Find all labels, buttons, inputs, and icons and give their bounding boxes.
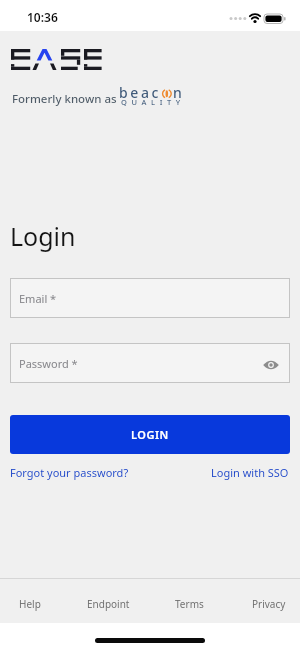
staticText: QUALITY xyxy=(121,97,185,107)
staticText: Email * xyxy=(19,291,57,306)
staticText: Endpoint xyxy=(87,597,130,611)
button[interactable]: Terms xyxy=(175,597,204,611)
staticText: Forgot your password? xyxy=(10,465,129,480)
staticText: 10:36 xyxy=(27,9,58,25)
staticText: Login xyxy=(10,219,76,253)
staticText: Help xyxy=(19,597,41,611)
button[interactable]: Password * xyxy=(10,343,290,383)
staticText: Formerly known as xyxy=(12,91,117,107)
button[interactable]: Email * xyxy=(10,278,290,318)
button[interactable]: Forgot your password? xyxy=(10,465,129,480)
staticText: Password * xyxy=(19,356,78,371)
button[interactable]: Help xyxy=(19,597,41,611)
staticText: n xyxy=(173,83,182,102)
staticText: Terms xyxy=(175,597,204,611)
button[interactable]: Privacy xyxy=(252,597,286,611)
button[interactable]: Endpoint xyxy=(87,597,130,611)
button[interactable]: LOGIN xyxy=(10,415,290,454)
staticText: LOGIN xyxy=(131,427,169,442)
button[interactable]: Login with SSO xyxy=(211,465,289,480)
staticText: beac xyxy=(119,83,161,102)
staticText: Login with SSO xyxy=(211,465,289,480)
staticText: Privacy xyxy=(252,597,286,611)
button[interactable] xyxy=(263,358,279,373)
